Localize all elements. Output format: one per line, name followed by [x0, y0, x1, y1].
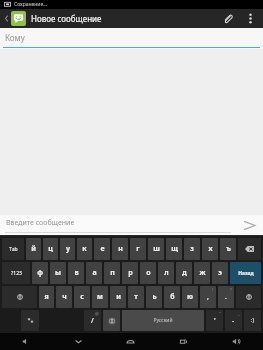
button[interactable]: к [77, 238, 92, 260]
staticText: п [110, 268, 115, 278]
button[interactable]: т [128, 286, 144, 308]
button[interactable]: п [104, 262, 120, 284]
staticText: й [31, 244, 36, 254]
button[interactable]: :) [244, 310, 261, 331]
button[interactable]: о [140, 262, 156, 284]
staticText: т [134, 292, 138, 302]
staticText: ш [153, 244, 160, 254]
staticText: к [82, 244, 87, 254]
staticText: Введите сообщение [6, 218, 75, 228]
button[interactable]: щ [166, 238, 182, 260]
staticText: ц [48, 244, 53, 254]
button[interactable]: Назад [230, 262, 261, 284]
button[interactable]: б [164, 286, 180, 308]
button[interactable]: г [130, 238, 146, 260]
staticText: и [116, 292, 121, 302]
button[interactable]: ъ [220, 238, 236, 260]
button[interactable]: del [238, 238, 261, 260]
button[interactable]: globe [103, 310, 120, 331]
staticText: _ [238, 311, 240, 316]
button[interactable]: я [39, 286, 54, 308]
button[interactable]: Attach [216, 9, 240, 28]
button[interactable]: ю [182, 286, 198, 308]
button[interactable]: р [122, 262, 138, 284]
staticText: ? [230, 287, 232, 292]
button[interactable]: ?123 [2, 262, 30, 284]
staticText: м [97, 292, 103, 302]
button[interactable]: Hide keyboard [52, 333, 104, 350]
button[interactable]: ш [148, 238, 164, 260]
button[interactable]: Home [104, 333, 157, 350]
button[interactable]: з [184, 238, 200, 260]
staticText: ъ [226, 244, 231, 254]
button[interactable]: " [206, 310, 223, 331]
button[interactable]: shift [236, 286, 261, 308]
button[interactable]: а [86, 262, 102, 284]
button[interactable]: ф [32, 262, 48, 284]
staticText: д [182, 268, 187, 278]
button[interactable]: ь [146, 286, 162, 308]
staticText: / [91, 316, 94, 326]
staticText: а [92, 268, 97, 278]
staticText: н [118, 244, 123, 254]
button[interactable]: Русский [122, 310, 204, 331]
staticText: л [164, 268, 169, 278]
button[interactable]: ц [43, 238, 58, 260]
button[interactable]: Введите сообщение [0, 215, 235, 235]
button[interactable]: х [202, 238, 218, 260]
button[interactable]: й [26, 238, 41, 260]
button[interactable]: ctrl [21, 310, 39, 331]
button[interactable]: и [110, 286, 126, 308]
staticText: ю [187, 292, 193, 302]
staticText: , [207, 292, 209, 302]
button[interactable]: ? [218, 286, 234, 308]
button[interactable]: е [94, 238, 110, 260]
staticText: Назад [238, 270, 254, 277]
button[interactable]: ч [56, 286, 72, 308]
button[interactable]: Messaging [11, 11, 26, 26]
staticText: э [218, 268, 222, 278]
button[interactable]: л [158, 262, 174, 284]
staticText: ! [212, 287, 214, 292]
staticText: о [146, 268, 151, 278]
staticText: " [219, 311, 221, 316]
button[interactable]: More options [240, 9, 260, 28]
button[interactable]: VolUp [210, 333, 263, 350]
staticText: у [66, 244, 70, 254]
button[interactable]: м [92, 286, 108, 308]
button[interactable]: у [60, 238, 75, 260]
staticText: х [208, 244, 213, 254]
staticText: - [232, 316, 235, 326]
button[interactable]: н [112, 238, 128, 260]
button[interactable]: Tab [2, 238, 24, 260]
button[interactable]: _ [225, 310, 242, 331]
staticText: ?123 [11, 270, 22, 277]
button[interactable]: @ [84, 310, 101, 331]
staticText: Русский [153, 317, 173, 324]
button[interactable]: VolDown [0, 333, 52, 350]
staticText: щ [171, 244, 178, 254]
button[interactable]: в [68, 262, 84, 284]
staticText: . [225, 292, 227, 302]
button[interactable]: э [212, 262, 228, 284]
staticText: Кому [5, 32, 25, 43]
button[interactable]: Recents [157, 333, 210, 350]
button[interactable]: Send [235, 215, 263, 235]
staticText: я [44, 292, 49, 302]
staticText: Сохранение... [14, 1, 48, 8]
button[interactable]: ! [200, 286, 216, 308]
staticText: г [136, 244, 140, 254]
button[interactable]: ы [50, 262, 66, 284]
button[interactable]: ж [194, 262, 210, 284]
button[interactable]: с [74, 286, 90, 308]
staticText: ч [62, 292, 67, 302]
staticText: :) [251, 317, 254, 324]
staticText: в [74, 268, 79, 278]
button[interactable]: shift [2, 286, 37, 308]
button[interactable]: Кому [0, 28, 263, 47]
staticText: ' [214, 316, 216, 326]
button[interactable]: д [176, 262, 192, 284]
staticText: ь [152, 292, 157, 302]
staticText: @ [95, 311, 99, 316]
other: Back [4, 14, 9, 23]
